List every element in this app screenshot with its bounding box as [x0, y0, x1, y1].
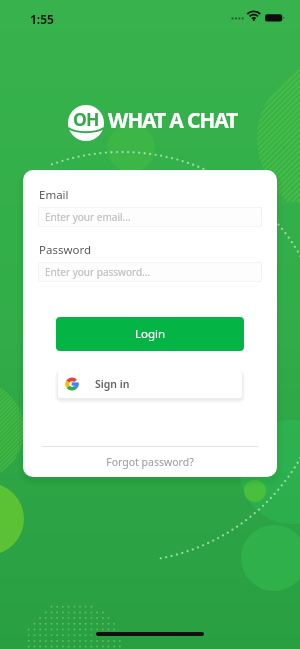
staticText: Login: [135, 326, 166, 342]
staticText: WHAT A CHAT: [108, 106, 238, 135]
staticText: Sign in: [95, 377, 130, 391]
staticText: 1:55: [30, 11, 54, 27]
staticText: Password: [39, 242, 92, 258]
button[interactable]: Sign in: [58, 370, 242, 398]
button[interactable]: Forgot password?: [23, 455, 277, 469]
staticText: OH: [73, 107, 99, 131]
button[interactable]: Enter your password...: [38, 262, 262, 282]
staticText: Enter your email...: [45, 210, 131, 224]
staticText: Enter your password...: [45, 265, 151, 279]
staticText: Email: [39, 187, 69, 203]
button[interactable]: Enter your email...: [38, 207, 262, 227]
button[interactable]: Login: [56, 317, 244, 351]
